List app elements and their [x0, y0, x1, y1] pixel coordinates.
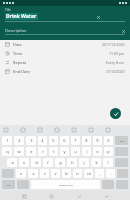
button[interactable]: Keyboard tool 6 — [88, 127, 94, 133]
staticText: 11:00 pm — [109, 51, 125, 56]
button[interactable]: w — [14, 147, 24, 156]
staticText: 2011/12/2020 — [102, 42, 125, 47]
button[interactable]: u — [71, 147, 80, 156]
staticText: u — [74, 149, 77, 154]
staticText: 0 — [107, 138, 110, 143]
button[interactable]: Keyboard tool 2 — [20, 127, 26, 133]
button[interactable]: a — [7, 158, 17, 167]
button[interactable]: Del — [115, 136, 128, 145]
button[interactable]: Keyboard tool 7 — [105, 127, 111, 133]
button[interactable]: 5 — [49, 136, 58, 145]
staticText: q — [6, 149, 9, 154]
button[interactable]: 9 — [93, 136, 102, 145]
button[interactable]: Ctrl — [2, 180, 15, 189]
button[interactable]: 3 — [26, 136, 36, 145]
button[interactable]: Keyboard tool 5 — [71, 127, 77, 133]
button[interactable]: Keyboard tool 4 — [54, 127, 60, 133]
button[interactable]: h — [67, 158, 77, 167]
button[interactable]: k — [91, 158, 101, 167]
staticText: End Date — [13, 69, 31, 74]
staticText: o — [96, 149, 99, 154]
button[interactable]: q — [2, 147, 12, 156]
button[interactable]: y — [60, 147, 69, 156]
button[interactable]: g — [55, 158, 65, 167]
button[interactable]: Hide keyboard — [102, 192, 110, 200]
staticText: Description — [5, 28, 27, 33]
staticText: 7 — [74, 138, 77, 143]
button[interactable]: Time — [0, 49, 130, 58]
button[interactable]: Clear description — [121, 29, 125, 33]
button[interactable]: Drink Water — [6, 13, 37, 20]
button[interactable]: Save — [110, 108, 121, 119]
button[interactable]: 4 — [38, 136, 47, 145]
button[interactable]: 1 — [2, 136, 12, 145]
button[interactable]: b — [62, 169, 71, 178]
staticText: p — [107, 149, 110, 154]
button[interactable]: Back — [75, 192, 83, 200]
staticText: Ctrl — [6, 183, 11, 186]
button[interactable]: i — [82, 147, 91, 156]
staticText: Del — [120, 139, 124, 142]
staticText: x — [32, 171, 35, 176]
button[interactable]: v — [51, 169, 60, 178]
staticText: e — [30, 149, 33, 154]
button[interactable]: c — [40, 169, 49, 178]
button[interactable]: x — [28, 169, 38, 178]
button[interactable]: 2 — [14, 136, 24, 145]
button[interactable]: p — [104, 147, 113, 156]
staticText: Time — [13, 51, 23, 56]
staticText: 3 — [30, 138, 33, 143]
staticText: Every Hour — [106, 60, 125, 65]
button[interactable]: Keyboard tool 1 — [3, 127, 9, 133]
button[interactable]: , — [95, 169, 104, 178]
staticText: Date — [13, 42, 22, 47]
staticText: Repeat — [13, 60, 27, 65]
button[interactable]: o — [93, 147, 102, 156]
button[interactable]: m — [84, 169, 93, 178]
staticText: . — [110, 171, 112, 176]
staticText: , — [99, 171, 101, 176]
staticText: Drink Water — [6, 13, 37, 20]
button[interactable]: 6 — [60, 136, 69, 145]
button[interactable]: End Date — [0, 67, 130, 76]
button[interactable]: f — [43, 158, 53, 167]
button[interactable]: Repeat — [0, 58, 130, 67]
button[interactable]: n — [73, 169, 82, 178]
button[interactable]: d — [31, 158, 41, 167]
button[interactable]: 7 — [71, 136, 80, 145]
button[interactable]: 0 — [104, 136, 113, 145]
staticText: s — [23, 160, 25, 165]
button[interactable]: j — [79, 158, 89, 167]
button[interactable]: s — [19, 158, 29, 167]
button[interactable]: English (US) — [31, 180, 100, 189]
button[interactable]: Clear title — [96, 15, 100, 19]
button[interactable]: l — [103, 158, 113, 167]
staticText: i — [86, 149, 88, 154]
button[interactable]: r — [38, 147, 47, 156]
button[interactable]: e — [26, 147, 36, 156]
staticText: n — [76, 171, 79, 176]
button[interactable]: z — [16, 169, 26, 178]
button[interactable]: Home — [47, 192, 55, 200]
button[interactable]: Keyboard tool 3 — [37, 127, 43, 133]
button[interactable]: 8 — [82, 136, 91, 145]
staticText: 5 — [52, 138, 55, 143]
staticText: 9 — [96, 138, 99, 143]
button[interactable]: t — [49, 147, 58, 156]
button[interactable]: Recents — [20, 192, 28, 200]
staticText: j — [83, 160, 85, 165]
staticText: c — [44, 171, 46, 176]
button[interactable]: Date — [0, 40, 130, 49]
staticText: b — [65, 171, 68, 176]
staticText: English (US) — [59, 183, 73, 186]
staticText: d — [35, 160, 38, 165]
